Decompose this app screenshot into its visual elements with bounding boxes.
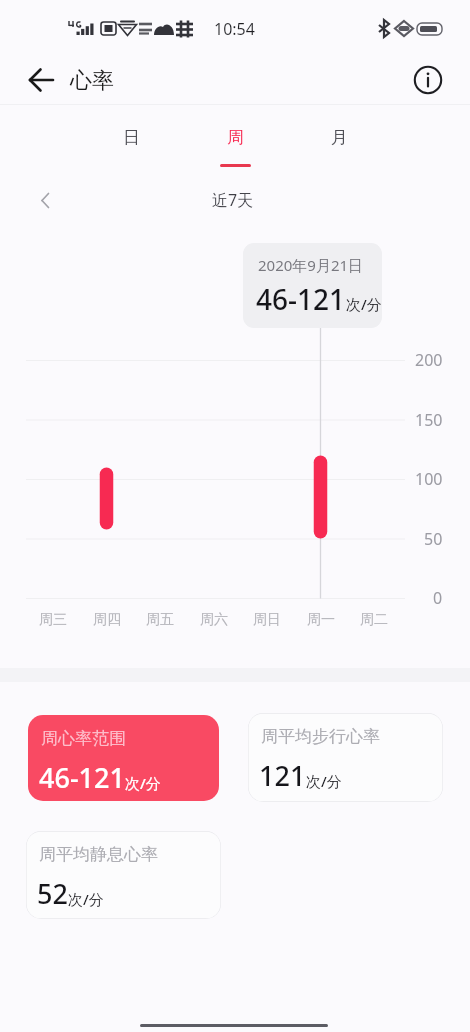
staticText: 次/分 xyxy=(68,889,104,909)
staticText: 周平均步行心率 xyxy=(261,726,380,747)
staticText: 100 xyxy=(415,468,443,490)
staticText: 周一 xyxy=(307,611,335,629)
staticText: 200 xyxy=(415,349,443,371)
staticText: 次/分 xyxy=(346,294,382,314)
button[interactable]: Info xyxy=(406,58,450,102)
staticText: 次/分 xyxy=(125,773,161,793)
staticText: 周日 xyxy=(253,611,281,629)
button[interactable]: 周心率范围 xyxy=(28,715,219,801)
staticText: 周平均静息心率 xyxy=(39,844,158,865)
staticText: 0 xyxy=(433,587,443,609)
staticText: 心率 xyxy=(70,67,114,95)
staticText: 日 xyxy=(123,127,140,148)
button[interactable]: Previous period xyxy=(28,183,64,219)
button[interactable]: 日 xyxy=(93,117,169,165)
staticText: 周四 xyxy=(93,611,121,629)
staticText: 次/分 xyxy=(306,771,342,791)
staticText: 46-121 xyxy=(256,280,346,318)
button[interactable]: 月 xyxy=(301,117,377,165)
staticText: 周心率范围 xyxy=(41,728,126,749)
staticText: 周二 xyxy=(360,611,388,629)
staticText: 2020年9月21日 xyxy=(258,255,364,275)
button[interactable]: 周平均步行心率 xyxy=(248,713,443,802)
staticText: 月 xyxy=(331,127,348,148)
button[interactable]: 周平均静息心率 xyxy=(26,831,221,919)
staticText: 周五 xyxy=(146,611,174,629)
staticText: 周 xyxy=(227,127,244,148)
button[interactable]: Back xyxy=(18,58,64,104)
staticText: 46-121 xyxy=(39,759,125,796)
staticText: 近7天 xyxy=(212,189,254,211)
staticText: 150 xyxy=(415,409,443,431)
staticText: 52 xyxy=(37,875,68,912)
staticText: 121 xyxy=(259,757,306,794)
button[interactable]: 周 xyxy=(197,117,273,165)
staticText: 50 xyxy=(424,528,443,550)
staticText: 10:54 xyxy=(214,18,255,40)
staticText: 周三 xyxy=(39,611,67,629)
staticText: 周六 xyxy=(200,611,228,629)
